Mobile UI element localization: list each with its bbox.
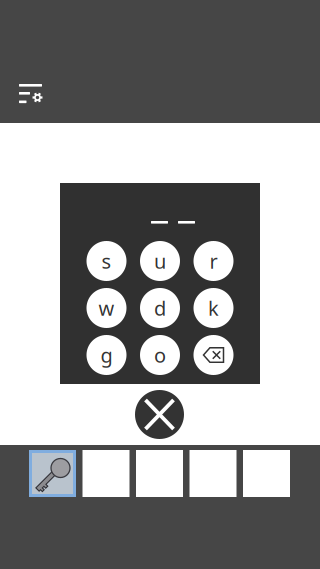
button[interactable]: r [193, 241, 233, 281]
staticText: g [100, 342, 112, 368]
staticText: w [98, 295, 114, 321]
button[interactable]: o [140, 335, 180, 375]
staticText: r [209, 248, 217, 274]
button[interactable]: Cancel [135, 390, 184, 439]
staticText: d [154, 295, 166, 321]
button[interactable]: g [86, 335, 126, 375]
button[interactable]: u [140, 241, 180, 281]
button[interactable]: s [86, 241, 126, 281]
button[interactable]: w [86, 288, 126, 328]
staticText: s [101, 248, 111, 274]
staticText: k [208, 295, 219, 321]
button[interactable]: Empty slot 2 [82, 450, 129, 497]
staticText: u [154, 248, 166, 274]
button[interactable]: Key slot 1 [29, 450, 76, 497]
button[interactable]: d [140, 288, 180, 328]
staticText: o [154, 342, 166, 368]
button[interactable]: Delete [193, 335, 233, 375]
button[interactable]: k [193, 288, 233, 328]
button[interactable]: Options [16, 77, 56, 113]
